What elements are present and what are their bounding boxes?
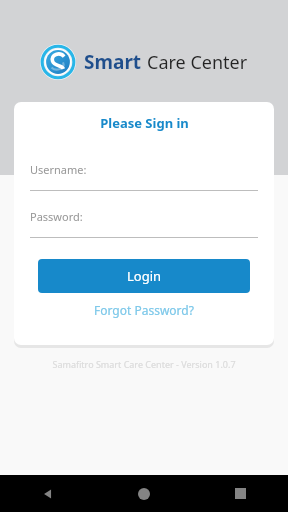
button[interactable]: Home bbox=[96, 475, 192, 512]
button[interactable]: Recent apps bbox=[192, 475, 288, 512]
button[interactable]: Login bbox=[38, 259, 250, 293]
staticText: Smart bbox=[84, 49, 142, 75]
button[interactable]: Forgot Password? bbox=[88, 300, 200, 320]
staticText: Login bbox=[127, 267, 162, 285]
staticText: Please Sign in bbox=[100, 114, 189, 132]
staticText: Password: bbox=[30, 209, 83, 224]
staticText: Username: bbox=[30, 162, 87, 177]
staticText: Forgot Password? bbox=[94, 302, 194, 318]
staticText: Care Center bbox=[147, 50, 248, 75]
staticText: Samafitro Smart Care Center - Version 1.… bbox=[52, 358, 236, 370]
button[interactable]: Username: bbox=[30, 162, 258, 191]
button[interactable]: Back bbox=[0, 475, 96, 512]
button[interactable]: Password: bbox=[30, 209, 258, 238]
